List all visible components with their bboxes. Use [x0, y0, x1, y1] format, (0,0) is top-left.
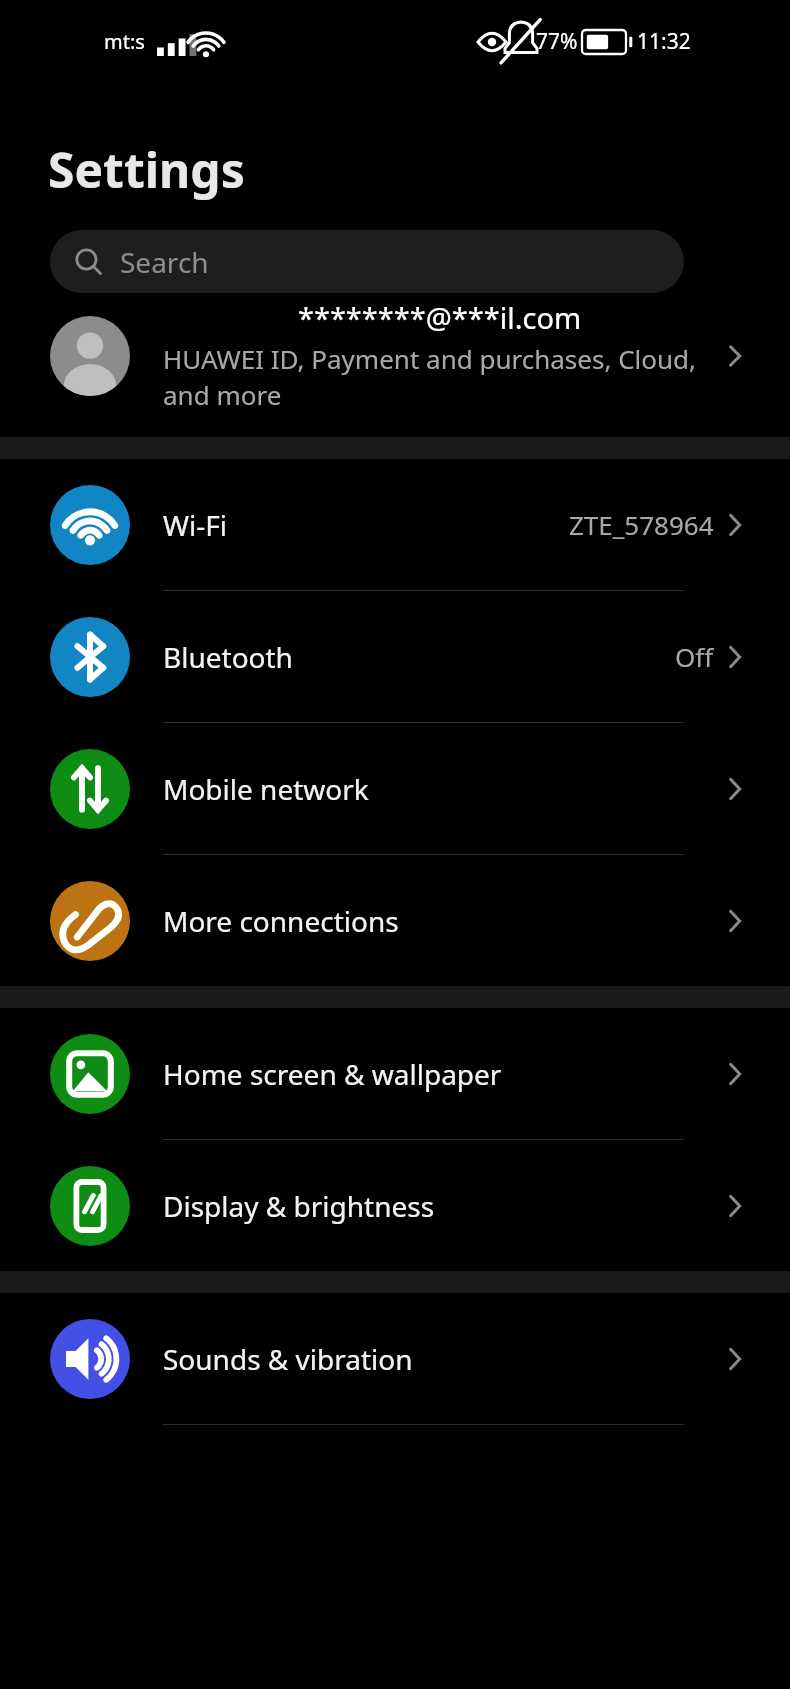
button[interactable]: Display & brightness: [0, 1140, 790, 1271]
staticText: ZTE_578964: [569, 507, 714, 542]
staticText: ********@***il.com: [163, 298, 716, 337]
button[interactable]: Mobile network: [0, 723, 790, 854]
staticText: More connections: [163, 902, 399, 940]
staticText: Search: [120, 243, 209, 281]
staticText: Home screen & wallpaper: [163, 1055, 502, 1093]
staticText: Sounds & vibration: [163, 1340, 413, 1378]
staticText: HUAWEI ID, Payment and purchases, Cloud,…: [163, 341, 716, 413]
staticText: Mobile network: [163, 770, 369, 808]
button[interactable]: Wi-Fi: [0, 459, 790, 590]
button[interactable]: Home screen & wallpaper: [0, 1008, 790, 1139]
button[interactable]: Search: [50, 230, 684, 293]
staticText: mt:s: [104, 28, 145, 55]
button[interactable]: Bluetooth: [0, 591, 790, 722]
staticText: Settings: [48, 137, 245, 202]
staticText: 11:32: [637, 27, 691, 56]
staticText: Display & brightness: [163, 1187, 435, 1225]
button[interactable]: ********@***il.com: [0, 293, 790, 418]
staticText: Bluetooth: [163, 638, 293, 676]
staticText: 77%: [536, 27, 578, 56]
staticText: Off: [675, 639, 714, 674]
button[interactable]: Sounds & vibration: [0, 1293, 790, 1424]
staticText: Wi-Fi: [163, 506, 228, 544]
button[interactable]: More connections: [0, 855, 790, 986]
